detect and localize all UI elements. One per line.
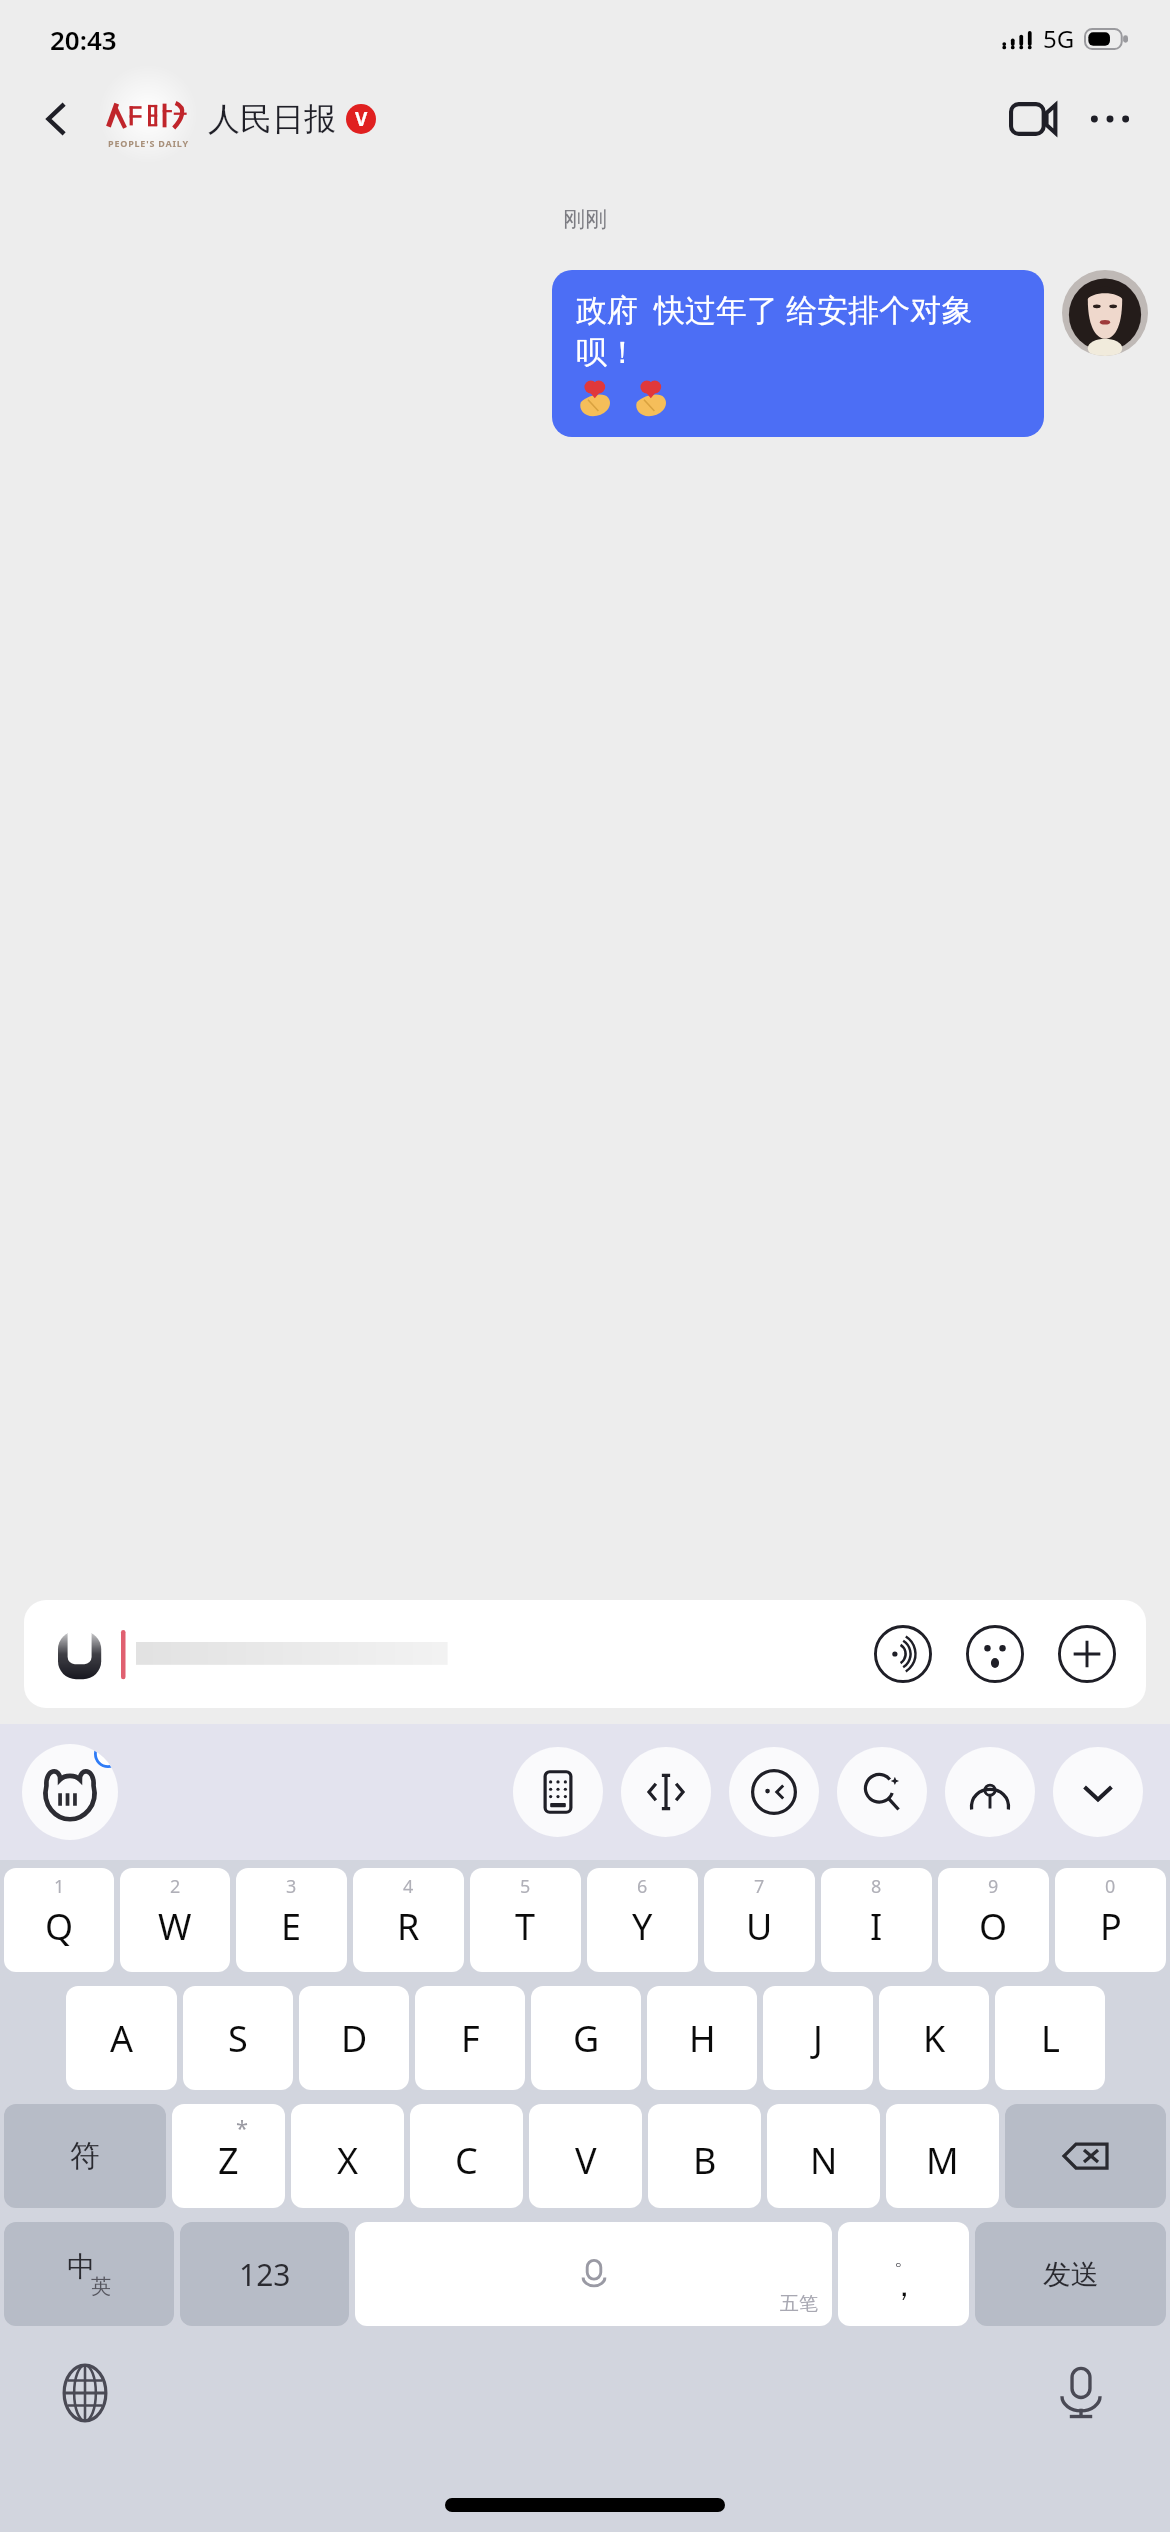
button[interactable]: K: [879, 1986, 989, 2090]
button[interactable]: Search: [837, 1747, 927, 1837]
staticText: Z: [218, 2136, 239, 2185]
staticText: 0: [1105, 1874, 1116, 1899]
button[interactable]: F: [415, 1986, 525, 2090]
button[interactable]: *: [172, 2104, 285, 2208]
staticText: 刚刚: [0, 206, 1170, 234]
button[interactable]: D: [299, 1986, 409, 2090]
staticText: 8: [871, 1874, 882, 1899]
button[interactable]: Backspace: [1005, 2104, 1166, 2208]
staticText: 政府 快过年了 给安排个对象呗！: [576, 288, 1020, 373]
button[interactable]: 政府 快过年了 给安排个对象呗！: [552, 270, 1044, 437]
button[interactable]: Profile picture: [1062, 270, 1148, 356]
staticText: B: [693, 2136, 717, 2185]
staticText: S: [228, 2014, 248, 2063]
button[interactable]: V: [529, 2104, 642, 2208]
staticText: E: [281, 1902, 302, 1951]
button[interactable]: 符: [4, 2104, 166, 2208]
staticText: P: [1100, 1902, 1122, 1951]
staticText: F: [461, 2014, 480, 2063]
staticText: 7: [754, 1874, 765, 1899]
button[interactable]: Switch language: [40, 2348, 130, 2438]
staticText: I: [870, 1902, 883, 1951]
button[interactable]: X: [291, 2104, 404, 2208]
staticText: PEOPLE'S DAILY: [108, 137, 189, 149]
button[interactable]: A: [66, 1986, 177, 2090]
staticText: *: [236, 2112, 249, 2142]
staticText: Q: [45, 1902, 74, 1951]
button[interactable]: B: [648, 2104, 761, 2208]
button[interactable]: [50, 1600, 870, 1708]
button[interactable]: 发送: [975, 2222, 1166, 2326]
staticText: W: [158, 1902, 192, 1951]
staticText: 人民日报: [208, 99, 336, 139]
button[interactable]: 0: [1055, 1868, 1166, 1972]
button[interactable]: S: [183, 1986, 293, 2090]
button[interactable]: Input method settings: [22, 1744, 118, 1840]
staticText: 。: [894, 2246, 914, 2271]
staticText: H: [689, 2014, 716, 2063]
button[interactable]: Back: [28, 89, 88, 149]
staticText: 3: [286, 1874, 297, 1899]
button[interactable]: Hide keyboard: [1053, 1747, 1143, 1837]
button[interactable]: 7: [704, 1868, 815, 1972]
button[interactable]: Emoticons: [729, 1747, 819, 1837]
staticText: 9: [988, 1874, 999, 1899]
button[interactable]: Move cursor: [621, 1747, 711, 1837]
staticText: N: [810, 2136, 838, 2185]
staticText: C: [455, 2136, 478, 2185]
staticText: 2: [170, 1874, 181, 1899]
staticText: i: [106, 1744, 111, 1764]
staticText: 符: [70, 2137, 100, 2175]
staticText: 6: [637, 1874, 648, 1899]
staticText: D: [341, 2014, 368, 2063]
button[interactable]: J: [763, 1986, 873, 2090]
staticText: 5: [520, 1874, 531, 1899]
staticText: G: [573, 2014, 600, 2063]
staticText: T: [515, 1902, 536, 1951]
button[interactable]: 123: [180, 2222, 349, 2326]
button[interactable]: 3: [236, 1868, 347, 1972]
button[interactable]: Voice input: [945, 1747, 1035, 1837]
staticText: 20:43: [50, 22, 117, 57]
button[interactable]: Voice input: [1036, 2348, 1126, 2438]
staticText: 中: [67, 2249, 95, 2284]
staticText: V: [355, 106, 368, 132]
button[interactable]: M: [886, 2104, 999, 2208]
staticText: A: [110, 2014, 134, 2063]
button[interactable]: Emoji: [962, 1621, 1028, 1687]
button[interactable]: H: [647, 1986, 757, 2090]
button[interactable]: C: [410, 2104, 523, 2208]
button[interactable]: 人民日报: [208, 99, 376, 139]
button[interactable]: 中: [4, 2222, 174, 2326]
button[interactable]: 1: [4, 1868, 114, 1972]
staticText: Y: [632, 1902, 653, 1951]
button[interactable]: Keyboard layout: [513, 1747, 603, 1837]
staticText: U: [746, 1902, 773, 1951]
button[interactable]: 2: [120, 1868, 230, 1972]
button[interactable]: Space: [355, 2222, 832, 2326]
button[interactable]: Video call: [998, 84, 1068, 154]
staticText: J: [813, 2014, 823, 2063]
button[interactable]: 9: [938, 1868, 1049, 1972]
button[interactable]: 。: [838, 2222, 969, 2326]
button[interactable]: More: [1054, 1621, 1120, 1687]
staticText: V: [575, 2136, 597, 2185]
button[interactable]: 5: [470, 1868, 581, 1972]
staticText: 5G: [1043, 22, 1075, 55]
button[interactable]: G: [531, 1986, 641, 2090]
button[interactable]: 6: [587, 1868, 698, 1972]
staticText: ，: [889, 2267, 919, 2305]
staticText: 4: [403, 1874, 414, 1899]
button[interactable]: More options: [1078, 87, 1142, 151]
staticText: L: [1041, 2014, 1060, 2063]
button[interactable]: 4: [353, 1868, 464, 1972]
button[interactable]: L: [995, 1986, 1105, 2090]
staticText: O: [979, 1902, 1008, 1951]
staticText: M: [926, 2136, 959, 2185]
staticText: 发送: [1043, 2257, 1099, 2292]
button[interactable]: N: [767, 2104, 880, 2208]
staticText: K: [923, 2014, 946, 2063]
button[interactable]: 8: [821, 1868, 932, 1972]
button[interactable]: Voice message: [870, 1621, 936, 1687]
staticText: R: [397, 1902, 420, 1951]
